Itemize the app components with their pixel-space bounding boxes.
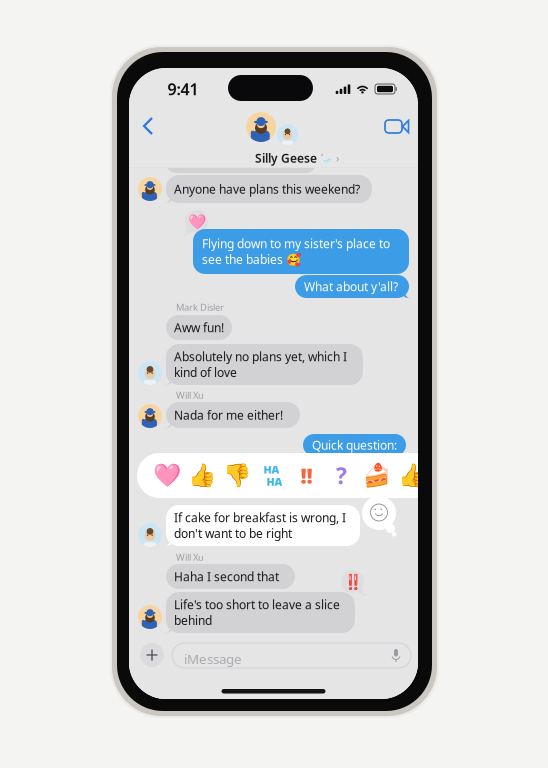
staticText: 👎 (222, 463, 250, 488)
staticText: 👍 (397, 463, 425, 488)
button[interactable]: FaceTime call (381, 110, 413, 142)
staticText: Will Xu (176, 551, 204, 563)
staticText: What about y'all? (304, 278, 398, 294)
staticText: Mark Disler (176, 301, 224, 313)
staticText: HA (266, 474, 282, 489)
button[interactable]: Add attachment (140, 643, 164, 667)
staticText: If cake for breakfast is wrong, I don't … (174, 510, 346, 541)
staticText: !! (300, 461, 312, 490)
staticText: Aww fun! (174, 319, 224, 335)
button[interactable]: Silly Geese (246, 112, 346, 164)
button[interactable]: iMessage (172, 643, 411, 668)
staticText: › (336, 151, 339, 165)
staticText: ‼️ (343, 573, 361, 590)
staticText: 🩷 (187, 213, 205, 230)
staticText: 🦢 (320, 152, 333, 164)
button[interactable]: Back (132, 110, 164, 142)
staticText: Will Xu (176, 389, 204, 401)
staticText: 9:41 (167, 78, 198, 100)
staticText: 🩷 (152, 463, 180, 488)
staticText: HA (263, 462, 279, 476)
staticText: 🍰 (362, 463, 390, 488)
staticText: Flying down to my sister's place to see … (202, 236, 390, 267)
staticText: Silly Geese (255, 150, 317, 166)
staticText: Anyone have plans this weekend? (174, 181, 360, 197)
staticText: Life's too short to leave a slice behind (174, 597, 340, 628)
staticText: 👍 (187, 463, 215, 488)
staticText: iMessage (184, 650, 242, 668)
staticText: Quick question: (312, 437, 397, 453)
staticText: Haha I second that (174, 568, 279, 584)
staticText: Absolutely no plans yet, which I kind of… (174, 349, 347, 380)
staticText: Nada for me either! (174, 407, 283, 423)
staticText: ? (336, 460, 347, 490)
